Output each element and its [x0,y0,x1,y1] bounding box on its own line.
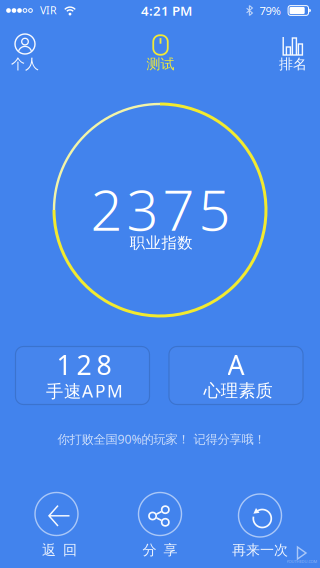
button[interactable]: 个人 [0,26,55,74]
staticText: 分 享 [142,541,177,559]
button[interactable]: 再来一次 [225,487,295,557]
button[interactable]: 返 回 [21,487,91,557]
staticText: 手 速 A P M [46,379,123,402]
staticText: 2375 [90,172,230,246]
button[interactable]: A [169,346,303,404]
staticText: 排名 [279,55,307,73]
staticText: 心理素质 [204,380,272,401]
button[interactable]: 测试 [130,26,190,74]
button[interactable]: 排名 [263,26,320,74]
staticText: 79% [259,3,280,18]
staticText: 职业指数 [130,233,192,253]
staticText: A [227,347,244,382]
staticText: YOUTHEDU.COM [286,559,317,564]
staticText: 返 回 [42,541,77,559]
button[interactable]: 分 享 [125,487,195,557]
button[interactable]: 128 [15,346,149,404]
staticText: 4:21 PM [141,2,192,19]
staticText: 再来一次 [232,541,288,559]
staticText: 测试 [146,55,174,73]
staticText: 128 [56,347,111,382]
staticText: 你打败全国90%的玩家！ 记得分享哦！ [57,431,265,447]
staticText: 个人 [11,55,39,73]
staticText: VIR [40,3,57,17]
